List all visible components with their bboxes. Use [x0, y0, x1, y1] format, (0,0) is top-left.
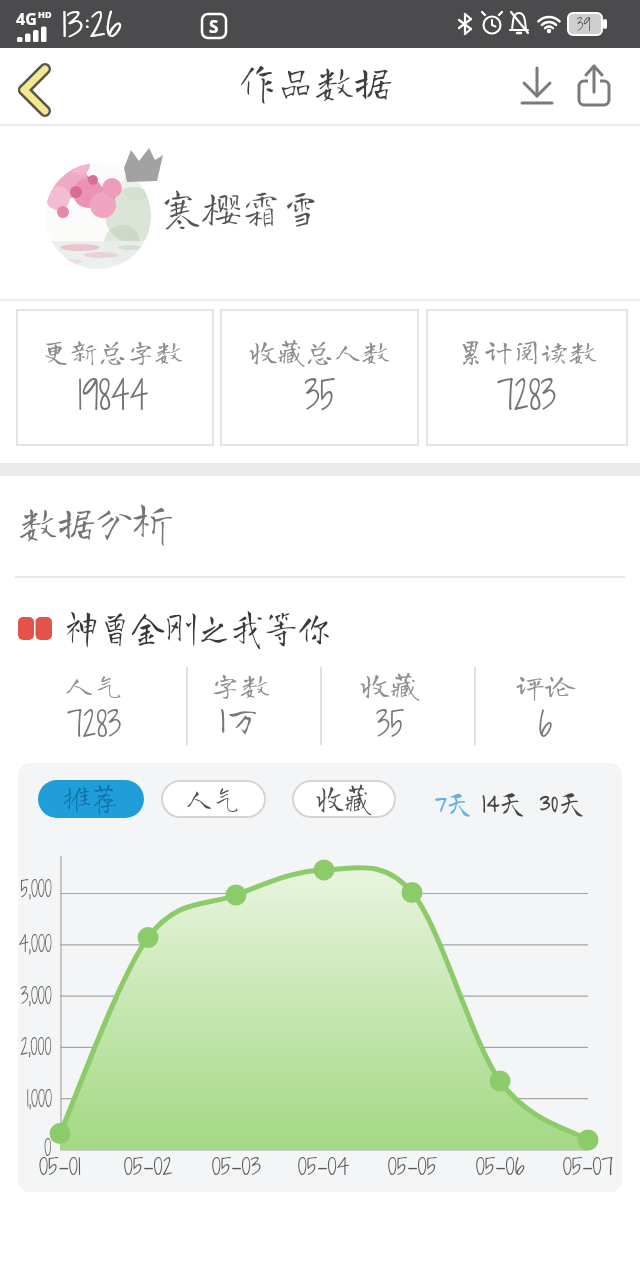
staticText: 4G — [16, 8, 37, 30]
staticText: 作品数据 — [238, 59, 392, 103]
staticText: S — [209, 15, 219, 38]
staticText: 05-06 — [476, 1150, 525, 1182]
staticText: 寒樱霜雪 — [162, 184, 320, 228]
staticText: 14天 — [481, 785, 527, 819]
button[interactable] — [292, 780, 396, 818]
button[interactable] — [480, 784, 532, 824]
staticText: 7283 — [67, 700, 122, 748]
staticText: 神兽金刚之我等你 — [65, 606, 331, 647]
staticText: 收藏 — [316, 781, 372, 814]
staticText: 人气 — [185, 781, 241, 814]
button[interactable] — [536, 784, 588, 824]
staticText: 05-02 — [124, 1150, 173, 1182]
button[interactable] — [220, 309, 419, 446]
staticText: 19844 — [78, 366, 148, 423]
button[interactable] — [510, 60, 566, 120]
staticText: 05-07 — [563, 1150, 614, 1182]
button[interactable] — [10, 605, 350, 655]
staticText: 推荐 — [63, 781, 119, 814]
staticText: 5,000 — [20, 874, 52, 904]
staticText: 字数 — [210, 670, 270, 700]
staticText: 更新总字数 — [42, 336, 184, 365]
staticText: 05-05 — [388, 1150, 437, 1182]
staticText: 2,000 — [20, 1032, 52, 1062]
staticText: 评论 — [515, 670, 575, 700]
staticText: 05-04 — [298, 1150, 350, 1182]
staticText: 13:26 — [62, 2, 122, 47]
staticText: 6 — [538, 700, 552, 748]
button[interactable] — [566, 60, 622, 120]
button[interactable] — [426, 309, 628, 446]
staticText: 人气 — [64, 670, 124, 700]
staticText: 收藏总人数 — [249, 336, 391, 365]
button[interactable] — [30, 150, 330, 280]
staticText: 05-03 — [212, 1150, 261, 1182]
staticText: 收藏 — [360, 670, 420, 700]
button[interactable] — [161, 780, 266, 818]
staticText: 30天 — [538, 785, 587, 819]
button[interactable] — [38, 780, 144, 818]
staticText: 35 — [376, 700, 405, 748]
staticText: 1,000 — [26, 1084, 52, 1114]
staticText: 7283 — [497, 366, 557, 423]
staticText: 05-01 — [39, 1150, 81, 1182]
staticText: 1万 — [219, 697, 261, 741]
staticText: 3,000 — [20, 981, 52, 1011]
staticText: 数据分析 — [19, 500, 172, 543]
staticText: 0 — [44, 1133, 52, 1163]
staticText: 4,000 — [19, 929, 52, 959]
button[interactable] — [428, 784, 478, 824]
staticText: 35 — [304, 366, 335, 423]
button[interactable] — [16, 309, 214, 446]
staticText: 7天 — [433, 786, 473, 819]
staticText: HD — [38, 8, 52, 20]
button[interactable] — [8, 60, 68, 120]
staticText: 39 — [577, 13, 591, 36]
staticText: 累计阅读数 — [456, 336, 598, 365]
